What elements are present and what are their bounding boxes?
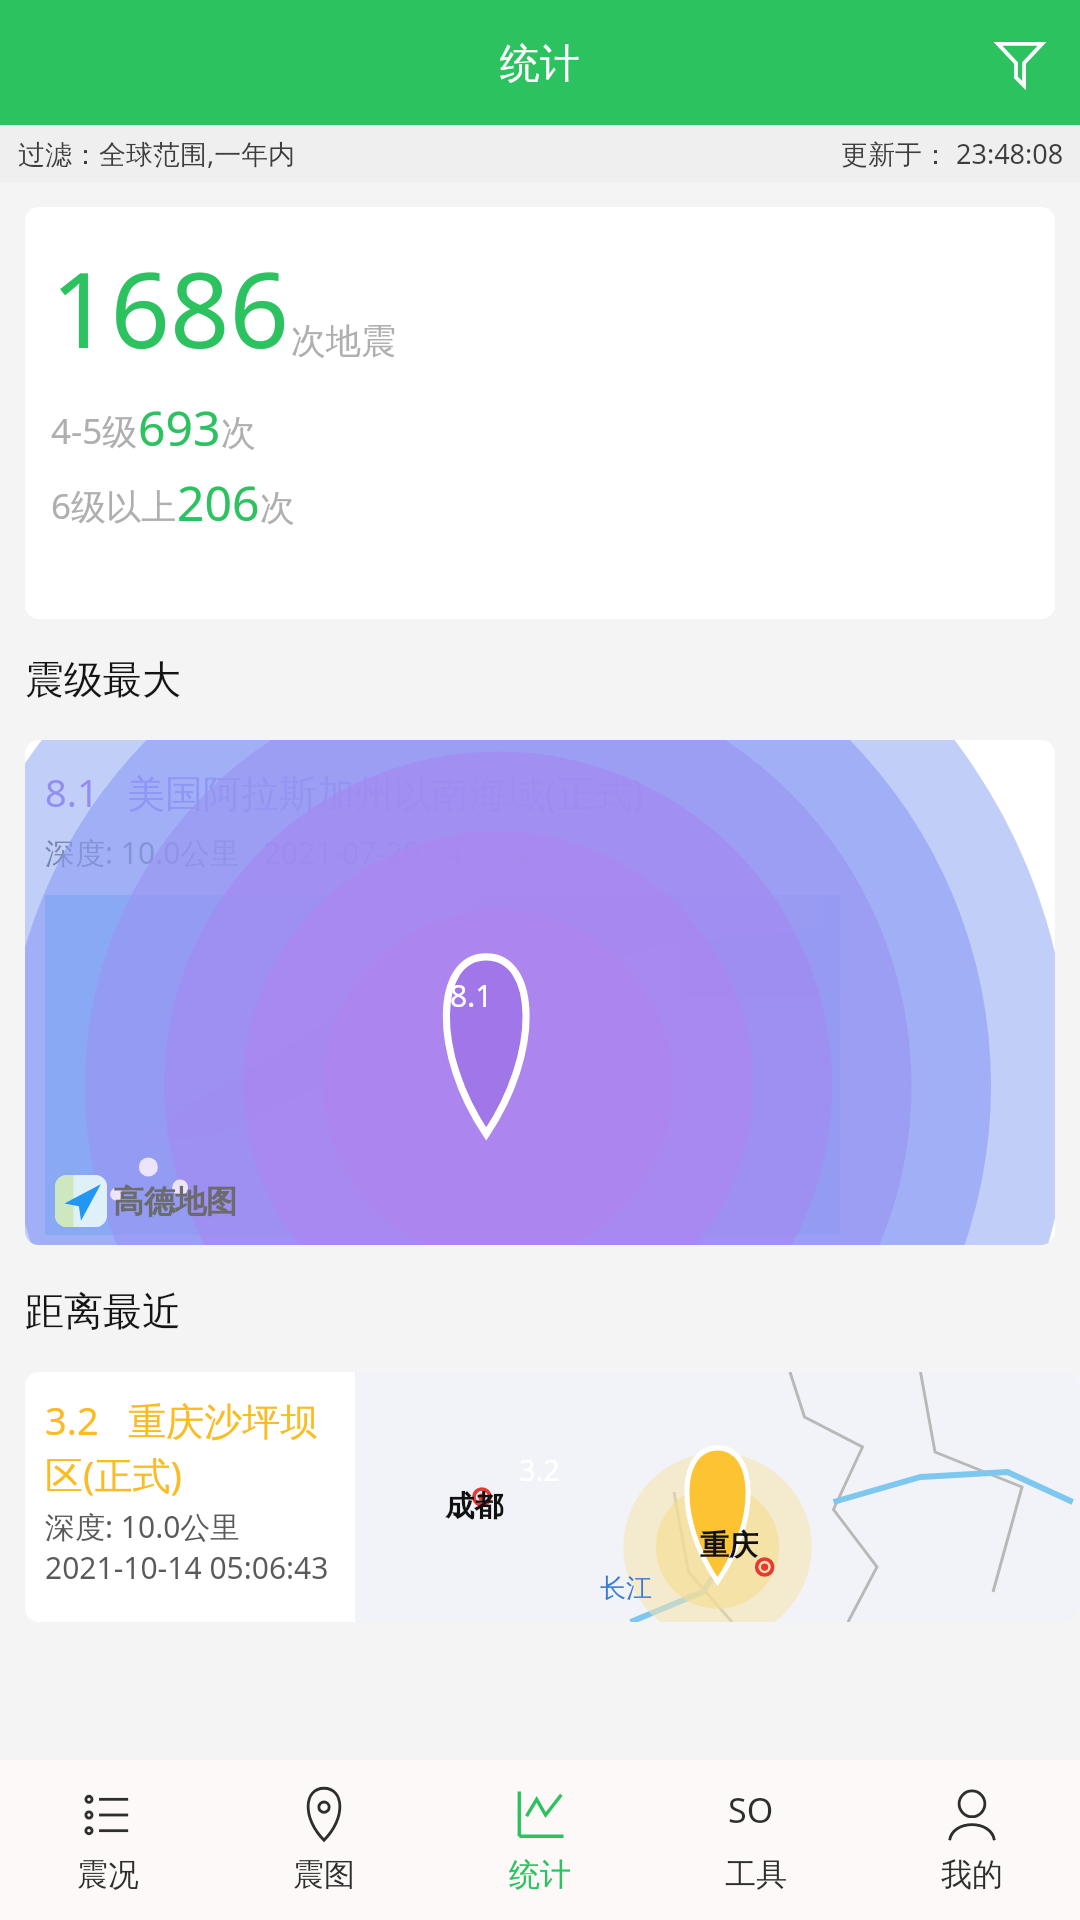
staticText: 成都 (445, 1488, 503, 1525)
staticText: 深度: 10.0公里 (45, 1506, 241, 1547)
staticText: 美国阿拉斯加州以南海域(正式) (127, 766, 644, 818)
staticText: 2021-10-14 05:06:43 (45, 1547, 329, 1588)
button[interactable]: 我的 (864, 1760, 1080, 1920)
staticText: 我的 (941, 1855, 1003, 1894)
staticText: 8.1 (450, 975, 493, 1016)
staticText: 6级以上 (51, 482, 177, 530)
button[interactable]: SOS (648, 1760, 864, 1920)
staticText: 统计 (509, 1855, 571, 1894)
staticText: 693 (138, 395, 221, 460)
button[interactable]: 震图 (216, 1760, 432, 1920)
staticText: 4-5级 (51, 407, 138, 455)
staticText: 重庆 (700, 1527, 758, 1564)
staticText: 次地震 (291, 319, 396, 363)
staticText: 震况 (77, 1855, 139, 1894)
staticText: SOS (728, 1787, 784, 1843)
staticText: 高德地图 (113, 1182, 237, 1221)
staticText: 206 (177, 470, 260, 535)
staticText: 统计 (500, 38, 580, 88)
staticText: 8.1 (45, 766, 99, 818)
button[interactable]: 1686 (25, 207, 1055, 619)
button[interactable]: 8.1 (25, 740, 1055, 1245)
button[interactable]: 3.2 重庆沙坪坝区(正式) (25, 1372, 1080, 1622)
staticText: 次 (260, 486, 295, 530)
button[interactable]: 震况 (0, 1760, 216, 1920)
staticText: 震级最大 (25, 655, 181, 704)
staticText: 深度: 10.0公里 2021-07-29 14:15:46 (45, 832, 548, 873)
staticText: 工具 (725, 1855, 787, 1894)
button[interactable]: 统计 (432, 1760, 648, 1920)
staticText: 距离最近 (25, 1287, 181, 1336)
staticText: 3.2 (519, 1450, 560, 1489)
staticText: 长江 (600, 1572, 652, 1605)
staticText: 1686 (51, 237, 289, 379)
staticText: 次 (221, 411, 256, 455)
staticText: 震图 (293, 1855, 355, 1894)
staticText: 更新于： 23:48:08 (841, 135, 1064, 172)
staticText: 过滤：全球范围,一年内 (18, 135, 296, 172)
staticText: 3.2 重庆沙坪坝区(正式) (45, 1394, 355, 1500)
button[interactable]: Filter (982, 25, 1058, 101)
